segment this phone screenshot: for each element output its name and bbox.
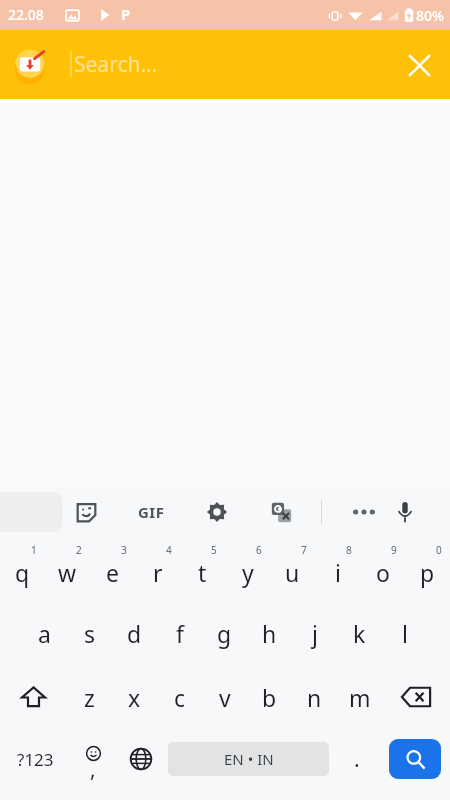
button[interactable]: EN • IN	[168, 742, 329, 776]
button[interactable]: a	[22, 601, 67, 665]
button[interactable]: 2	[45, 537, 90, 601]
staticText: 8	[346, 543, 352, 557]
button[interactable]: Switch language	[117, 729, 164, 789]
staticText: t	[198, 557, 207, 588]
staticText: 22.08	[8, 5, 44, 24]
button[interactable]: c	[157, 665, 202, 729]
button[interactable]: Shift	[0, 665, 67, 729]
staticText: m	[349, 682, 371, 713]
staticText: 0	[436, 543, 442, 557]
button[interactable]: Settings	[197, 492, 237, 532]
button[interactable]: n	[292, 665, 337, 729]
staticText: a	[38, 618, 51, 649]
staticText: ?123	[17, 748, 54, 771]
staticText: k	[353, 618, 366, 649]
button[interactable]: f	[157, 601, 202, 665]
button[interactable]: k	[337, 601, 382, 665]
button[interactable]: 6	[225, 537, 270, 601]
staticText: f	[176, 618, 184, 649]
staticText: ,	[90, 755, 96, 784]
button[interactable]: d	[112, 601, 157, 665]
staticText: v	[219, 682, 231, 713]
staticText: l	[402, 618, 408, 649]
staticText: b	[262, 682, 277, 713]
staticText: 7	[301, 543, 307, 557]
button[interactable]: 5	[180, 537, 225, 601]
button[interactable]: Emoji and comma	[70, 729, 117, 789]
staticText: 9	[391, 543, 397, 557]
button[interactable]: .	[333, 729, 380, 789]
staticText: s	[84, 618, 96, 649]
button[interactable]: ?123	[0, 729, 70, 789]
button[interactable]: Translate	[261, 492, 301, 532]
staticText: 2	[76, 543, 82, 557]
staticText: x	[128, 682, 141, 713]
button[interactable]: GIF	[130, 492, 172, 532]
button[interactable]: l	[382, 601, 427, 665]
staticText: o	[376, 557, 390, 588]
staticText: i	[335, 557, 341, 588]
button[interactable]: j	[292, 601, 337, 665]
staticText: 6	[256, 543, 262, 557]
button[interactable]: 7	[270, 537, 315, 601]
staticText: d	[127, 618, 142, 649]
button[interactable]: App icon	[14, 49, 46, 81]
button[interactable]: h	[247, 601, 292, 665]
staticText: 5	[211, 543, 217, 557]
button[interactable]: 9	[360, 537, 405, 601]
button[interactable]: 0	[405, 537, 450, 601]
staticText: c	[174, 682, 186, 713]
staticText: w	[58, 557, 77, 588]
button[interactable]: Stickers	[66, 492, 106, 532]
button[interactable]: Backspace	[382, 665, 450, 729]
staticText: 1	[31, 543, 37, 557]
staticText: q	[15, 557, 30, 588]
button[interactable]: s	[67, 601, 112, 665]
button[interactable]: x	[112, 665, 157, 729]
staticText: e	[106, 557, 119, 588]
staticText: P	[121, 4, 131, 24]
staticText: .	[354, 745, 360, 774]
staticText: EN • IN	[224, 749, 274, 769]
button[interactable]: 3	[90, 537, 135, 601]
button[interactable]: 8	[315, 537, 360, 601]
staticText: y	[242, 557, 254, 588]
button[interactable]: b	[247, 665, 292, 729]
button[interactable]: m	[337, 665, 382, 729]
button[interactable]: g	[202, 601, 247, 665]
button[interactable]: 1	[0, 537, 45, 601]
staticText: h	[262, 618, 277, 649]
staticText: p	[420, 557, 435, 588]
staticText: r	[153, 557, 163, 588]
staticText: g	[217, 618, 232, 649]
staticText: z	[84, 682, 95, 713]
staticText: 3	[121, 543, 127, 557]
staticText: n	[307, 682, 322, 713]
button[interactable]: More options	[344, 492, 384, 532]
button[interactable]: Close search	[400, 46, 438, 84]
staticText: Search…	[74, 50, 158, 79]
staticText: u	[285, 557, 300, 588]
button[interactable]: Voice input	[385, 492, 425, 532]
button[interactable]: z	[67, 665, 112, 729]
button[interactable]: v	[202, 665, 247, 729]
staticText: 80%	[416, 6, 444, 25]
staticText: 4	[166, 543, 172, 557]
staticText: j	[312, 618, 318, 649]
button[interactable]: 4	[135, 537, 180, 601]
button[interactable]: Search	[389, 739, 441, 779]
staticText: GIF	[138, 502, 165, 522]
